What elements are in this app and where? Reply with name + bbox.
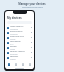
staticText: My devices — [7, 16, 22, 20]
button[interactable]: Tab 4 — [27, 61, 33, 67]
button[interactable]: Tab 2 — [13, 61, 19, 67]
staticText: Front door lock — [10, 35, 24, 38]
staticText: 21°C — [10, 43, 14, 45]
staticText: Manage your devices — [18, 2, 46, 6]
staticText: Everything in one place — [22, 6, 43, 9]
staticText: Garage — [10, 45, 17, 48]
button[interactable]: Speakers — [5, 55, 34, 60]
staticText: Closed — [10, 48, 16, 50]
staticText: Speakers — [10, 55, 19, 58]
staticText: Living room TV — [10, 25, 24, 28]
button[interactable]: Front door lock — [5, 35, 34, 40]
staticText: Recording — [10, 53, 18, 55]
staticText: Kitchen lights — [10, 30, 23, 33]
button[interactable]: Tab 3 — [20, 61, 26, 67]
staticText: Thermostat — [10, 40, 21, 43]
button[interactable]: Thermostat — [5, 40, 34, 45]
staticText: Locked — [10, 38, 16, 40]
button[interactable]: Garage — [5, 45, 34, 50]
button[interactable]: Security camera — [5, 50, 34, 55]
button[interactable]: Living room TV — [5, 25, 34, 30]
staticText: Security camera — [10, 50, 25, 53]
button[interactable]: Kitchen lights — [5, 30, 34, 35]
staticText: Playing — [10, 58, 16, 60]
staticText: 3 bulbs on — [10, 33, 18, 35]
button[interactable]: Tab 1 — [6, 61, 12, 67]
staticText: Connected — [10, 28, 19, 30]
